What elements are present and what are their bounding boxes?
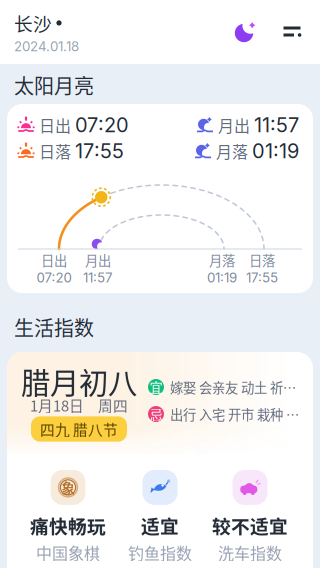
staticText: 中国象棋 <box>36 541 100 564</box>
staticText: 11:57 <box>254 113 299 137</box>
staticText: 07:20 <box>36 270 71 286</box>
staticText: 痛快畅玩 <box>30 512 106 539</box>
button[interactable]: 夜间模式 <box>232 18 260 46</box>
staticText: 月落 <box>216 139 248 163</box>
staticText: 洗车指数 <box>218 541 282 564</box>
staticText: 腊月初八 <box>21 360 137 402</box>
staticText: 生活指数 <box>14 312 94 341</box>
staticText: 01:19 <box>252 139 299 163</box>
staticText: 日落 <box>39 139 71 163</box>
staticText: 07:20 <box>75 113 129 137</box>
staticText: 周四 <box>98 394 128 416</box>
button[interactable]: 菜单 <box>280 19 306 45</box>
staticText: 适宜 <box>141 512 179 539</box>
staticText: 17:55 <box>246 270 278 286</box>
staticText: 太阳月亮 <box>14 70 94 99</box>
staticText: 宜 <box>149 377 162 397</box>
staticText: 较不适宜 <box>212 512 288 539</box>
staticText: 11:57 <box>83 270 113 286</box>
staticText: 四九 腊八节 <box>40 418 118 440</box>
staticText: 钓鱼指数 <box>128 541 192 564</box>
staticText: 日出 <box>39 113 71 137</box>
staticText: 1月18日 <box>30 394 84 416</box>
staticText: 日出 <box>41 250 67 270</box>
button[interactable]: 较不适宜 <box>199 473 301 561</box>
staticText: 月出 <box>218 113 250 137</box>
staticText: 日落 <box>249 250 275 270</box>
button[interactable]: 适宜 <box>109 473 211 561</box>
staticText: 象 <box>61 478 74 497</box>
button[interactable]: 象 <box>17 473 119 561</box>
staticText: 2024.01.18 <box>14 38 79 54</box>
staticText: 嫁娶 会亲友 动土 祈福 纳畜… <box>170 377 300 397</box>
staticText: 月出 <box>85 250 111 270</box>
staticText: 长沙 <box>14 9 52 36</box>
staticText: 月落 <box>209 250 235 270</box>
staticText: 17:55 <box>75 139 124 163</box>
staticText: 忌 <box>149 404 162 424</box>
staticText: 出行 入宅 开市 栽种 安葬 … <box>170 404 300 424</box>
staticText: 01:19 <box>207 270 237 286</box>
